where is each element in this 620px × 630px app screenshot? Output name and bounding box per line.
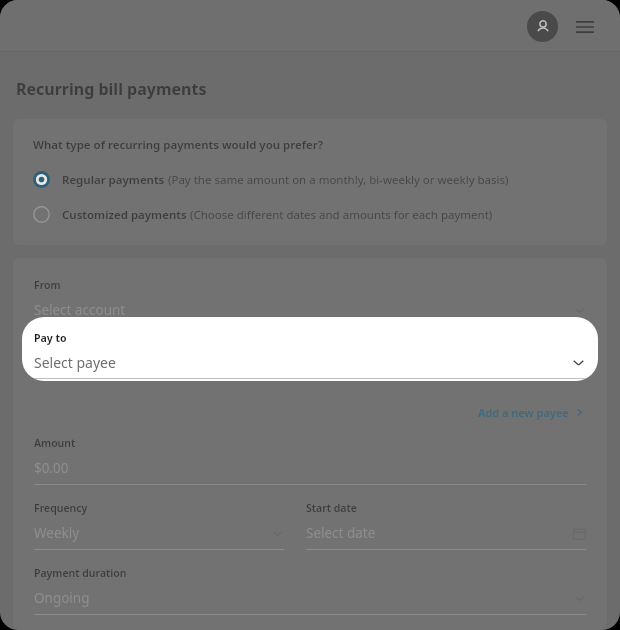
staticText: Start date — [306, 501, 357, 515]
button[interactable]: Profile — [527, 11, 558, 42]
button[interactable]: Payment duration — [34, 566, 586, 615]
staticText: Customized payments — [62, 207, 187, 223]
button[interactable]: Start date — [306, 501, 586, 550]
staticText: From — [34, 278, 61, 292]
staticText: $0.00 — [34, 459, 69, 477]
button[interactable]: Menu — [572, 14, 598, 40]
button[interactable]: Pay to — [22, 317, 598, 381]
staticText: Weekly — [34, 524, 80, 542]
staticText: Pay to — [34, 331, 67, 345]
staticText: Regular payments — [62, 172, 165, 188]
staticText: (Pay the same amount on a monthly, bi-we… — [165, 172, 509, 188]
button[interactable]: Add a new payee — [476, 403, 586, 422]
staticText: Amount — [34, 436, 76, 450]
staticText: Frequency — [34, 501, 88, 515]
staticText: Add a new payee — [478, 405, 569, 420]
staticText: Payment duration — [34, 566, 127, 580]
staticText: (Choose different dates and amounts for … — [187, 207, 493, 223]
staticText: Select date — [306, 524, 376, 542]
button[interactable]: Amount — [34, 436, 586, 485]
staticText: Ongoing — [34, 589, 90, 607]
button[interactable]: Customized payments — [33, 204, 591, 225]
button[interactable]: Frequency — [34, 501, 284, 550]
staticText: Select payee — [34, 353, 116, 372]
button[interactable]: Regular payments — [33, 169, 591, 190]
staticText: Select account — [34, 301, 126, 319]
staticText: What type of recurring payments would yo… — [33, 137, 324, 153]
button[interactable]: From — [34, 278, 586, 327]
staticText: Recurring bill payments — [16, 78, 207, 100]
